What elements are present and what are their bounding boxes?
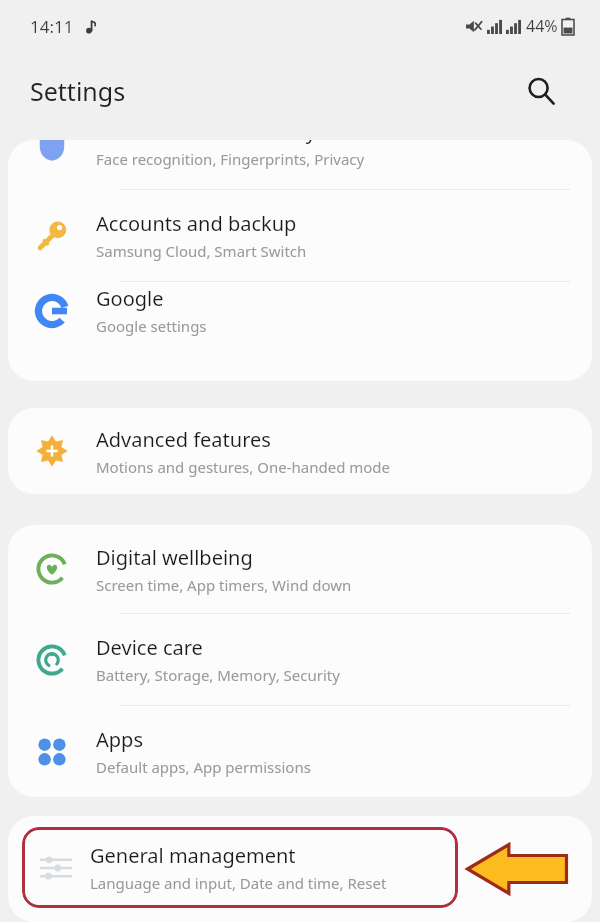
staticText: Language and input, Date and time, Reset: [90, 873, 387, 893]
staticText: Default apps, App permissions: [96, 757, 311, 777]
button[interactable]: Search: [517, 67, 565, 115]
staticText: Google: [96, 285, 164, 312]
staticText: Face recognition, Fingerprints, Privacy: [96, 149, 365, 169]
button[interactable]: Biometrics and security: [8, 140, 592, 189]
button[interactable]: Google: [8, 282, 592, 339]
button[interactable]: General management: [22, 827, 458, 908]
button[interactable]: Accounts and backup: [8, 190, 592, 281]
staticText: Apps: [96, 726, 143, 753]
staticText: Settings: [30, 74, 126, 108]
staticText: Google settings: [96, 316, 207, 336]
staticText: Battery, Storage, Memory, Security: [96, 665, 340, 685]
button[interactable]: Digital wellbeing: [8, 525, 592, 613]
button[interactable]: Apps: [8, 706, 592, 797]
staticText: Samsung Cloud, Smart Switch: [96, 241, 307, 261]
button[interactable]: Advanced features: [8, 408, 592, 494]
staticText: Screen time, App timers, Wind down: [96, 575, 352, 595]
staticText: Motions and gestures, One-handed mode: [96, 457, 391, 477]
button[interactable]: Device care: [8, 614, 592, 705]
staticText: Device care: [96, 634, 203, 661]
staticText: General management: [90, 842, 296, 869]
staticText: Digital wellbeing: [96, 544, 253, 571]
staticText: 44%: [526, 15, 558, 37]
staticText: Accounts and backup: [96, 210, 297, 237]
staticText: 14:11: [30, 15, 74, 38]
staticText: Biometrics and security: [96, 140, 316, 145]
staticText: Advanced features: [96, 426, 271, 453]
